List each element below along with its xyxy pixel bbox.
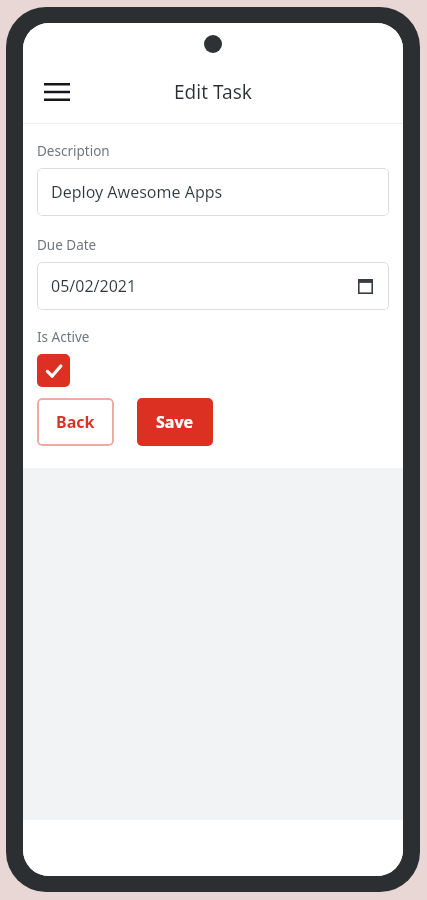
button[interactable]: Deploy Awesome Apps: [37, 168, 389, 216]
staticText: Description: [37, 142, 110, 160]
staticText: Save: [156, 411, 194, 433]
button[interactable]: Pick date: [355, 276, 375, 296]
button[interactable]: Save: [137, 398, 213, 446]
button[interactable]: Back: [37, 398, 114, 446]
staticText: Edit Task: [174, 79, 252, 105]
button[interactable]: 05/02/2021: [37, 262, 389, 310]
staticText: Due Date: [37, 236, 97, 254]
staticText: Back: [56, 411, 95, 433]
button[interactable]: Is Active checkbox: [37, 354, 70, 387]
staticText: 05/02/2021: [51, 275, 137, 297]
button[interactable]: Menu: [35, 70, 79, 114]
staticText: Is Active: [37, 328, 90, 346]
staticText: Deploy Awesome Apps: [51, 181, 223, 203]
